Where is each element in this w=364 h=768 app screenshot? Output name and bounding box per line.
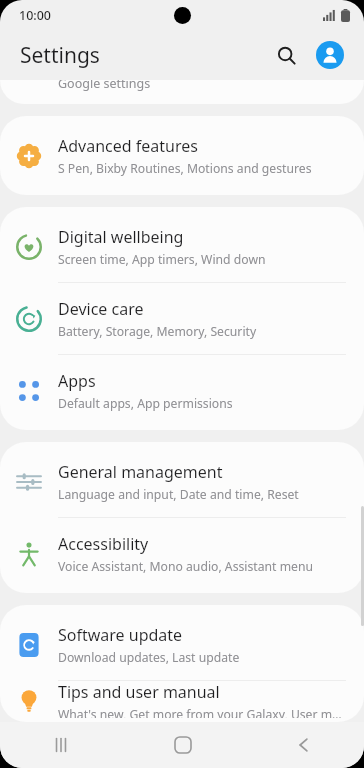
staticText: S Pen, Bixby Routines, Motions and gestu… bbox=[58, 160, 312, 177]
button[interactable]: Google settings bbox=[0, 80, 364, 104]
button[interactable]: Home bbox=[122, 722, 243, 768]
staticText: Download updates, Last update bbox=[58, 649, 240, 666]
staticText: Google settings bbox=[58, 80, 151, 92]
button[interactable]: General management bbox=[0, 446, 364, 517]
button[interactable]: Device care bbox=[0, 283, 364, 354]
staticText: Settings bbox=[20, 41, 100, 70]
staticText: Software update bbox=[58, 624, 183, 646]
button[interactable]: Back bbox=[243, 722, 364, 768]
staticText: General management bbox=[58, 461, 223, 483]
staticText: Battery, Storage, Memory, Security bbox=[58, 323, 257, 340]
button[interactable]: Tips and user manual bbox=[0, 681, 364, 718]
staticText: Screen time, App timers, Wind down bbox=[58, 251, 266, 268]
staticText: Accessibility bbox=[58, 533, 149, 555]
staticText: What's new, Get more from your Galaxy, U… bbox=[58, 706, 346, 718]
staticText: Advanced features bbox=[58, 135, 198, 157]
button[interactable]: Apps bbox=[0, 355, 364, 426]
staticText: Device care bbox=[58, 298, 144, 320]
staticText: Digital wellbeing bbox=[58, 226, 184, 248]
staticText: Voice Assistant, Mono audio, Assistant m… bbox=[58, 558, 313, 575]
staticText: 10:00 bbox=[19, 7, 52, 24]
button[interactable]: Account bbox=[310, 35, 350, 75]
staticText: Default apps, App permissions bbox=[58, 395, 233, 412]
button[interactable]: Digital wellbeing bbox=[0, 211, 364, 282]
button[interactable]: Recent apps bbox=[0, 722, 122, 768]
staticText: Language and input, Date and time, Reset bbox=[58, 486, 299, 503]
staticText: Apps bbox=[58, 370, 96, 392]
button[interactable]: Advanced features bbox=[0, 120, 364, 191]
button[interactable]: Software update bbox=[0, 609, 364, 680]
staticText: Tips and user manual bbox=[58, 681, 220, 703]
button[interactable]: Accessibility bbox=[0, 518, 364, 589]
button[interactable]: Search bbox=[266, 35, 306, 75]
